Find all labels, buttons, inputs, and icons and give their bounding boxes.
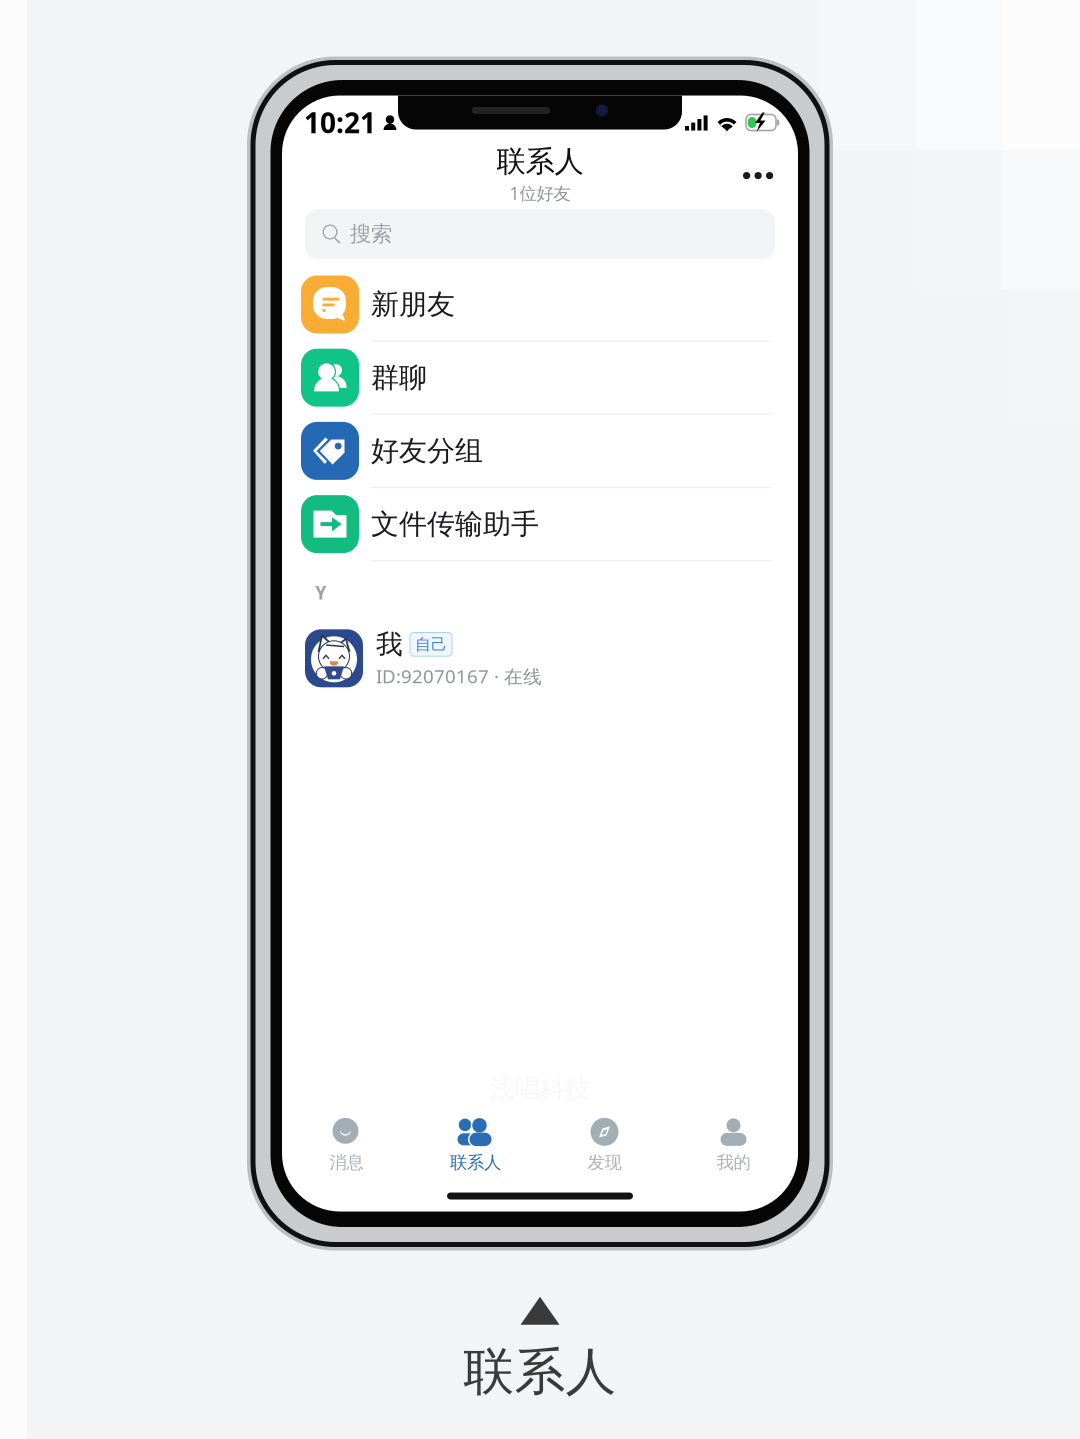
- staticText: 我: [376, 628, 403, 661]
- button[interactable]: 联系人: [411, 1120, 540, 1170]
- staticText: 联系人: [450, 1152, 501, 1173]
- button[interactable]: 群聊: [301, 342, 779, 415]
- staticText: 发现: [587, 1152, 621, 1173]
- staticText: 浅唱科技: [490, 1073, 590, 1104]
- staticText: 好友分组: [371, 434, 483, 468]
- button[interactable]: 文件传输助手: [301, 488, 779, 561]
- staticText: 搜索: [350, 221, 392, 247]
- staticText: 群聊: [371, 360, 427, 395]
- staticText: 文件传输助手: [371, 507, 539, 541]
- staticText: 联系人: [463, 1341, 616, 1403]
- staticText: Y: [315, 580, 327, 605]
- staticText: 自己: [415, 634, 447, 654]
- button[interactable]: 新朋友: [301, 268, 779, 342]
- staticText: 1位好友: [509, 181, 570, 204]
- staticText: 新朋友: [371, 287, 455, 322]
- staticText: 联系人: [496, 143, 583, 179]
- staticText: 我的: [716, 1152, 750, 1173]
- button[interactable]: 我的: [669, 1120, 798, 1170]
- staticText: ID:92070167 · 在线: [376, 664, 542, 689]
- button[interactable]: 消息: [282, 1120, 411, 1170]
- button[interactable]: 发现: [540, 1120, 669, 1170]
- staticText: 10:21: [304, 104, 376, 141]
- staticText: 消息: [329, 1152, 363, 1173]
- button[interactable]: More: [731, 156, 786, 188]
- button[interactable]: 我: [305, 623, 775, 693]
- button[interactable]: 好友分组: [301, 415, 779, 488]
